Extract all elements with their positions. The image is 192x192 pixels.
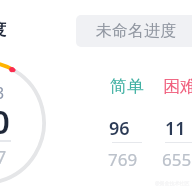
staticText: 7 bbox=[0, 145, 7, 170]
staticText: 度 bbox=[0, 20, 6, 40]
staticText: 11 bbox=[165, 116, 186, 141]
staticText: 3 bbox=[0, 82, 5, 104]
staticText: 655 bbox=[162, 148, 192, 171]
staticText: @掘金技术社区 bbox=[155, 180, 190, 187]
staticText: 96 bbox=[109, 116, 130, 141]
staticText: 困难 bbox=[163, 76, 192, 97]
staticText: 未命名进度 bbox=[96, 21, 176, 41]
button[interactable] bbox=[110, 76, 150, 168]
staticText: 0 bbox=[0, 99, 10, 144]
staticText: 简单 bbox=[110, 76, 144, 97]
button[interactable] bbox=[163, 76, 192, 168]
button[interactable]: 未命名进度 bbox=[76, 15, 192, 47]
staticText: 769 bbox=[108, 148, 138, 171]
